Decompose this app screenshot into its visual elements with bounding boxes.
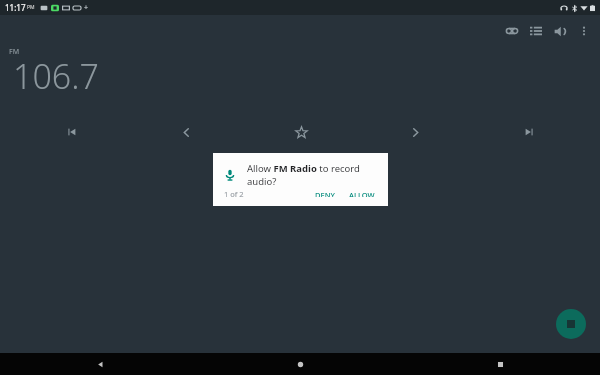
button[interactable]: ALLOW xyxy=(344,188,380,199)
button[interactable]: More options xyxy=(572,19,596,43)
button[interactable]: Record xyxy=(500,19,524,43)
staticText: PM xyxy=(27,4,35,11)
button[interactable]: Recent apps xyxy=(400,353,600,375)
staticText: FM xyxy=(9,47,20,57)
button[interactable]: Station list xyxy=(524,19,548,43)
button[interactable]: Previous station xyxy=(14,115,129,149)
button[interactable]: Stop xyxy=(556,309,586,339)
button[interactable]: Back xyxy=(0,353,200,375)
button[interactable]: Favorite xyxy=(244,115,358,149)
button[interactable]: Volume xyxy=(548,19,572,43)
button[interactable]: Seek down xyxy=(129,115,244,149)
staticText: 1 of 2 xyxy=(224,189,244,199)
staticText: + xyxy=(84,3,89,13)
button[interactable]: Home xyxy=(200,353,400,375)
button[interactable]: Next station xyxy=(472,115,586,149)
button[interactable]: DENY xyxy=(310,188,340,199)
button[interactable]: Seek up xyxy=(358,115,472,149)
staticText: 11:17 xyxy=(5,2,26,13)
staticText: 106.7 xyxy=(13,53,99,99)
staticText: Allow FM Radio to record audio? xyxy=(247,162,388,188)
staticText: DENY xyxy=(315,190,335,197)
staticText: ALLOW xyxy=(349,190,375,197)
